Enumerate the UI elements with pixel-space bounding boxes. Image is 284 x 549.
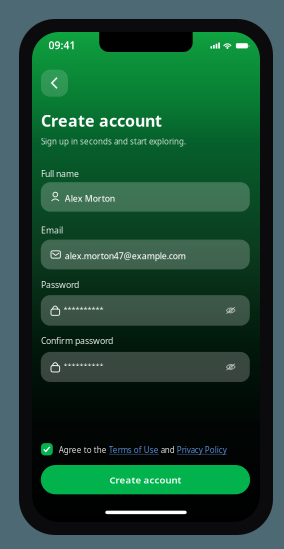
staticText: ********** <box>64 361 104 370</box>
staticText: Privacy Policy <box>177 445 227 455</box>
staticText: Full name <box>41 168 79 179</box>
button[interactable]: Back <box>41 70 68 97</box>
staticText: Terms of Use <box>109 445 159 455</box>
staticText: Agree to the <box>59 445 109 455</box>
staticText: Alex Morton <box>65 193 115 204</box>
button[interactable]: Agree to terms <box>41 443 53 455</box>
staticText: and <box>159 445 177 455</box>
staticText: Create account <box>109 473 181 486</box>
button[interactable]: Privacy Policy <box>177 445 227 455</box>
staticText: alex.morton47@example.com <box>65 250 186 262</box>
staticText: Sign up in seconds and start exploring. <box>41 136 186 147</box>
staticText: ********** <box>64 304 104 314</box>
button[interactable]: Create account <box>41 465 250 494</box>
staticText: 09:41 <box>49 38 76 52</box>
button[interactable]: Terms of Use <box>109 445 159 455</box>
staticText: Email <box>41 224 63 236</box>
staticText: Password <box>41 279 79 290</box>
staticText: Create account <box>41 110 162 131</box>
staticText: Confirm password <box>41 335 113 346</box>
